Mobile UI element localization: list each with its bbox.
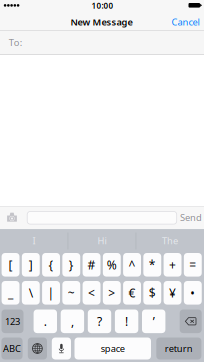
staticText: \ (29, 285, 33, 301)
button[interactable] (62, 281, 80, 305)
staticText: | (47, 285, 54, 301)
staticText: ABC (3, 342, 21, 355)
staticText: ’ (153, 313, 155, 329)
button[interactable] (164, 253, 181, 277)
staticText: ? (97, 313, 102, 329)
staticText: € (128, 285, 135, 301)
button[interactable] (103, 253, 121, 277)
staticText: * (149, 257, 156, 273)
staticText: ¥ (169, 285, 176, 301)
staticText: return (165, 342, 193, 355)
button[interactable] (143, 281, 161, 305)
staticText: [ (8, 257, 12, 273)
button[interactable] (2, 281, 19, 305)
button[interactable] (103, 281, 121, 305)
button[interactable] (184, 253, 202, 277)
staticText: ^ (128, 257, 135, 273)
staticText: > (108, 285, 115, 301)
button[interactable] (1, 309, 23, 333)
staticText: I (32, 234, 35, 247)
staticText: = (189, 257, 196, 273)
button[interactable] (34, 309, 57, 333)
button[interactable] (83, 281, 100, 305)
staticText: + (169, 257, 176, 273)
button[interactable]: Cancel (167, 13, 203, 30)
staticText: $ (149, 285, 156, 301)
staticText: # (87, 257, 95, 273)
button[interactable]: I (0, 0, 204, 362)
button[interactable] (88, 309, 111, 333)
button[interactable] (42, 253, 60, 277)
staticText: ] (29, 257, 33, 273)
staticText: Cancel (171, 16, 199, 28)
staticText: < (88, 285, 95, 301)
button[interactable] (1, 337, 23, 359)
staticText: Send (180, 211, 202, 224)
button[interactable] (142, 309, 165, 333)
staticText: 10:00 (91, 0, 113, 11)
staticText: ~ (68, 285, 75, 301)
button[interactable] (115, 309, 138, 333)
button[interactable]: Dictation (52, 337, 71, 359)
button[interactable] (156, 337, 201, 359)
button[interactable] (42, 281, 60, 305)
staticText: • (190, 285, 195, 301)
staticText: Hi (97, 234, 106, 247)
staticText: space (101, 342, 125, 355)
button[interactable]: Next keyboard (28, 337, 47, 359)
button[interactable] (184, 281, 202, 305)
staticText: The (162, 234, 178, 247)
button[interactable] (123, 281, 141, 305)
button[interactable] (22, 281, 40, 305)
staticText: { (48, 257, 53, 273)
staticText: ! (125, 313, 128, 329)
staticText: New Message (70, 16, 132, 28)
button[interactable] (164, 281, 181, 305)
button[interactable]: Delete (180, 309, 202, 333)
button[interactable] (2, 253, 19, 277)
staticText: . (44, 313, 47, 329)
button[interactable]: To: (0, 31, 204, 54)
button[interactable] (22, 253, 40, 277)
staticText: } (69, 257, 74, 273)
staticText: _ (8, 285, 13, 301)
button[interactable] (62, 253, 80, 277)
button[interactable] (74, 337, 151, 359)
button[interactable]: Hi (0, 0, 204, 362)
button[interactable]: The (0, 0, 204, 362)
button[interactable] (61, 309, 84, 333)
staticText: , (71, 313, 74, 329)
staticText: % (107, 257, 117, 273)
staticText: To: (9, 36, 23, 49)
button[interactable]: Send (178, 209, 204, 225)
staticText: 123 (5, 315, 20, 327)
button[interactable]: Take photo (2, 207, 22, 227)
button[interactable] (123, 253, 141, 277)
button[interactable] (83, 253, 100, 277)
button[interactable] (143, 253, 161, 277)
